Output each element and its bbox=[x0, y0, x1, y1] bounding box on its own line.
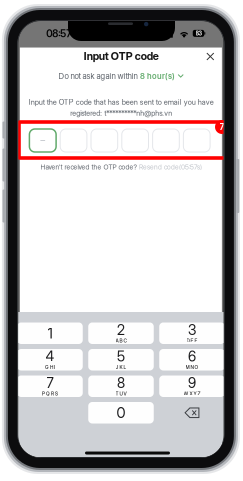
staticText: Haven't received the OTP code? bbox=[40, 163, 136, 171]
button[interactable]: OTP digit bbox=[60, 129, 87, 152]
staticText: 4 bbox=[45, 348, 54, 365]
button[interactable]: Do not ask again within bbox=[38, 70, 204, 81]
button[interactable]: 7 bbox=[17, 375, 83, 397]
staticText: T U V bbox=[115, 391, 126, 397]
staticText: G H I bbox=[45, 364, 55, 370]
staticText: 08:57 bbox=[46, 28, 71, 40]
staticText: 0 bbox=[116, 404, 125, 422]
staticText: J K L bbox=[115, 364, 126, 370]
staticText: Input the OTP code that has been sent to… bbox=[29, 98, 214, 107]
button[interactable]: 2 bbox=[88, 322, 154, 344]
button[interactable]: 4 bbox=[17, 349, 83, 370]
staticText: 9 bbox=[188, 374, 196, 391]
staticText: 8 hour(s) bbox=[140, 71, 175, 81]
staticText: A B C bbox=[115, 338, 126, 344]
staticText: 8 bbox=[117, 374, 125, 391]
staticText: Input OTP code bbox=[84, 49, 159, 63]
button[interactable]: Close bbox=[202, 49, 218, 63]
button[interactable]: OTP digit bbox=[91, 129, 118, 152]
staticText: D E F bbox=[186, 338, 197, 344]
button[interactable]: 8 bbox=[88, 375, 154, 397]
staticText: 6 bbox=[188, 348, 196, 365]
staticText: registered: t**********nh@phs.vn bbox=[70, 109, 172, 117]
staticText: Resend code(05:57s) bbox=[139, 163, 202, 171]
button[interactable]: OTP digit bbox=[183, 129, 210, 152]
staticText: 7 bbox=[219, 122, 224, 132]
staticText: 5 bbox=[117, 348, 125, 365]
button[interactable]: OTP digit bbox=[122, 129, 148, 152]
button[interactable]: Resend code(05:57s) bbox=[139, 163, 202, 171]
button[interactable]: 0 bbox=[88, 402, 154, 423]
button[interactable]: 1 bbox=[17, 322, 83, 344]
staticText: P Q R S bbox=[42, 391, 58, 397]
button[interactable]: Delete bbox=[159, 402, 225, 423]
staticText: 1 bbox=[47, 324, 52, 342]
button[interactable]: 9 bbox=[159, 375, 225, 397]
staticText: W X Y Z bbox=[183, 391, 200, 397]
button[interactable]: 5 bbox=[88, 349, 154, 370]
staticText: Do not ask again within bbox=[59, 71, 138, 81]
staticText: 83 bbox=[195, 30, 201, 37]
button[interactable]: OTP digit bbox=[29, 129, 56, 152]
button[interactable]: OTP digit bbox=[153, 129, 179, 152]
staticText: 2 bbox=[117, 321, 125, 338]
button[interactable]: 6 bbox=[159, 349, 225, 370]
staticText: 7 bbox=[46, 374, 53, 391]
staticText: 3 bbox=[188, 321, 196, 338]
staticText: M N O bbox=[185, 364, 198, 370]
button[interactable]: 3 bbox=[159, 322, 225, 344]
